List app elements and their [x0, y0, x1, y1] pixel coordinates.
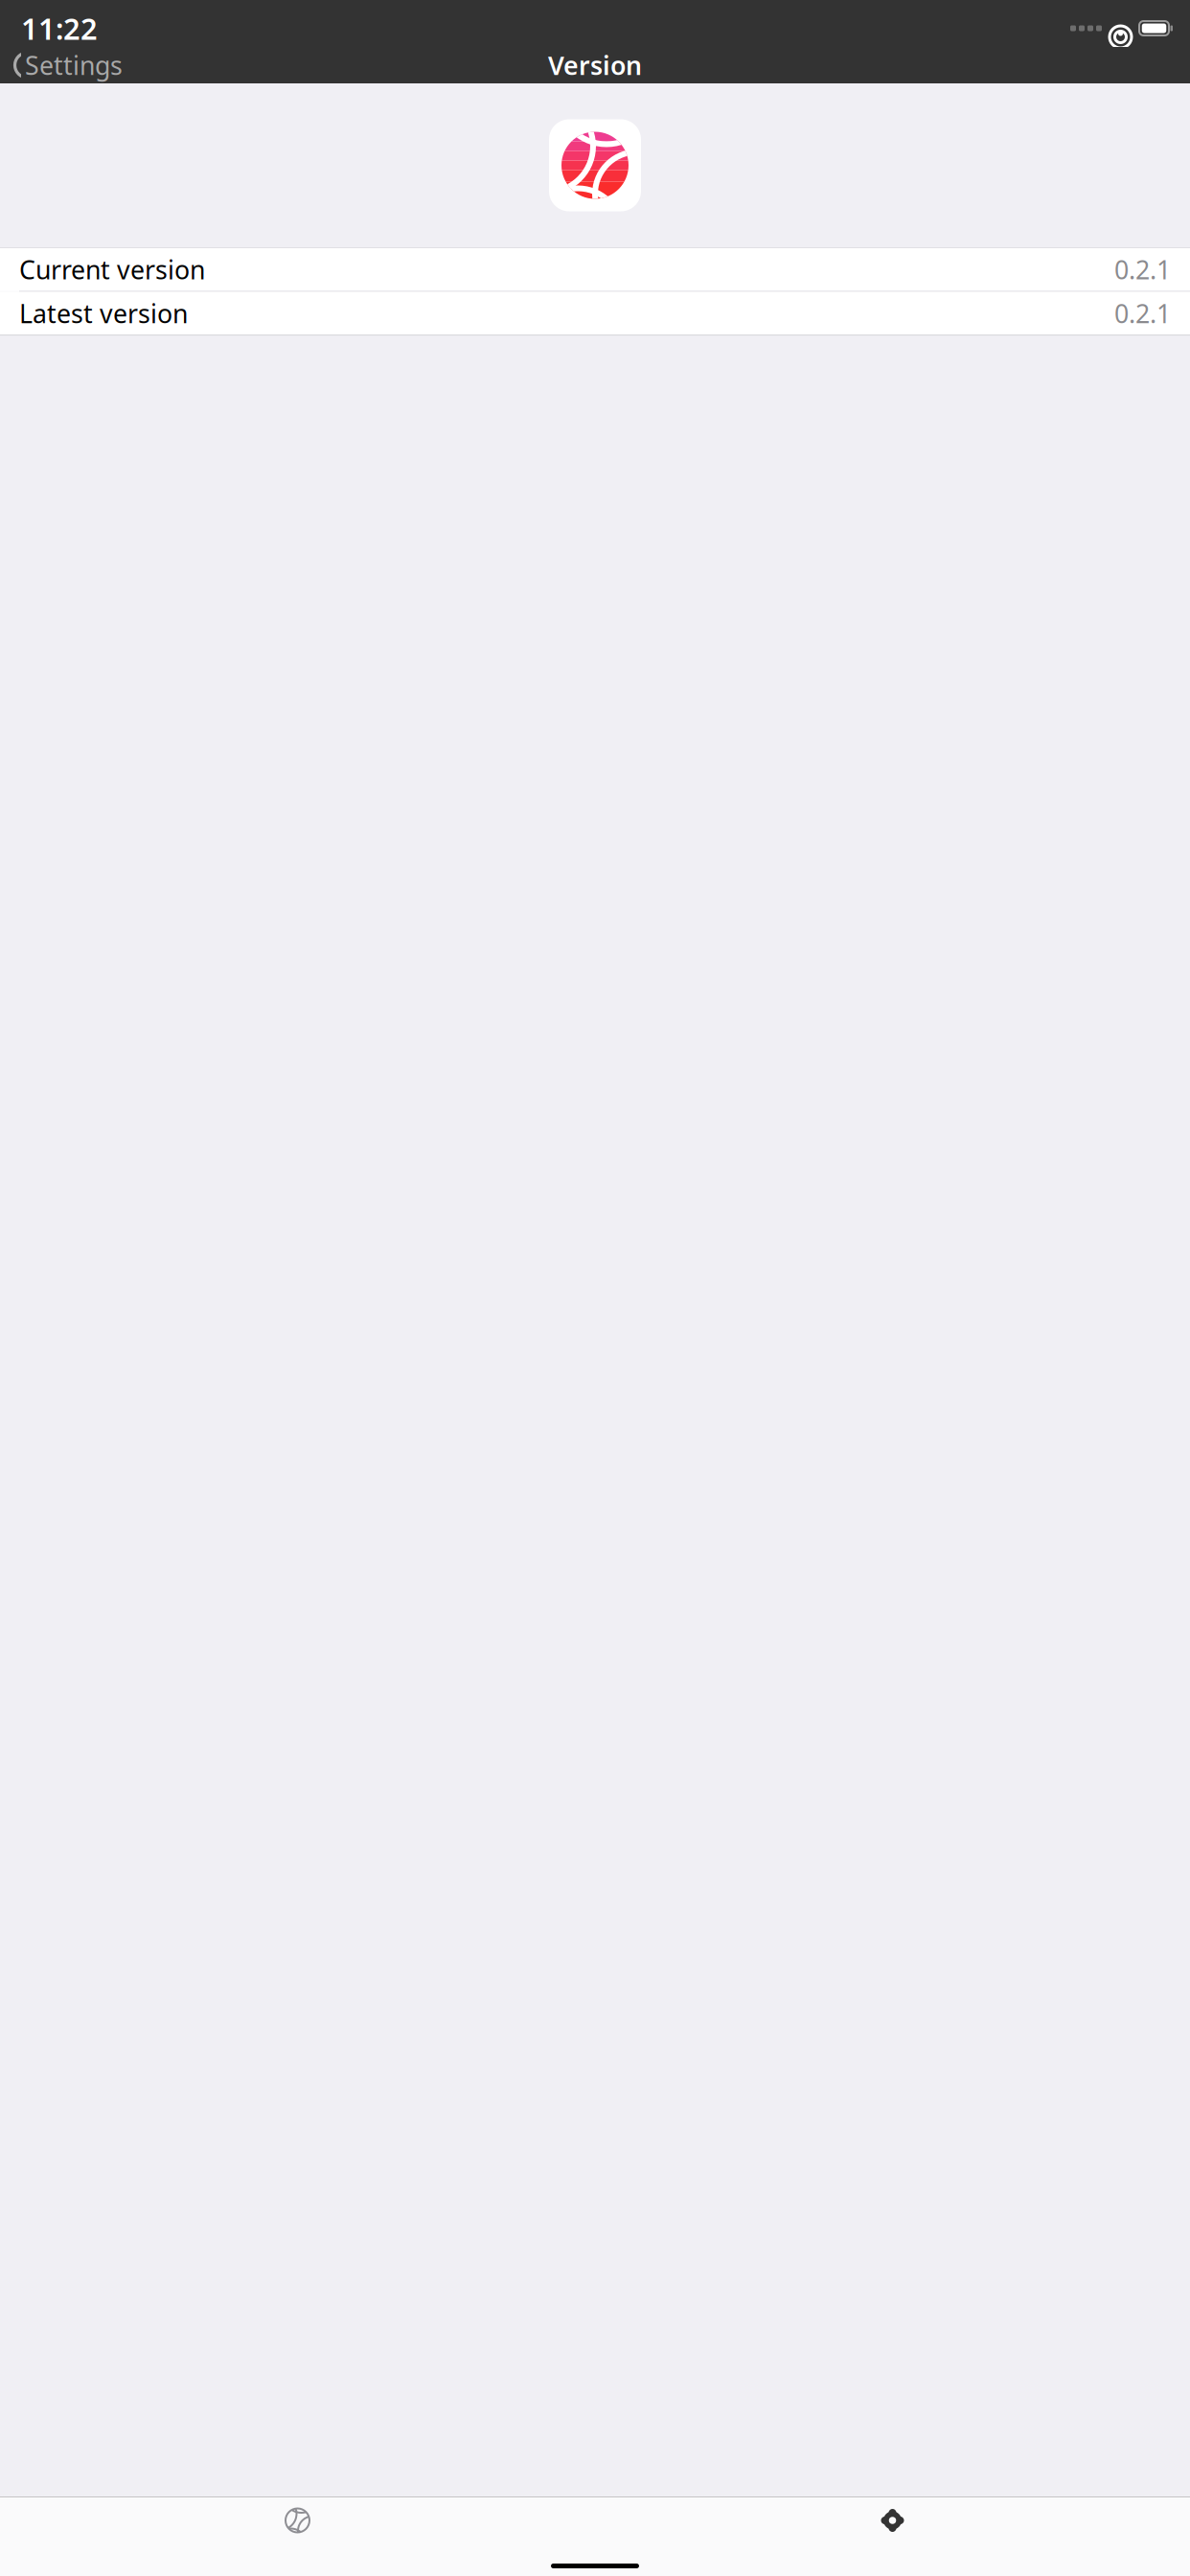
button[interactable]: Latest version	[0, 292, 1190, 335]
staticText: Latest version	[19, 296, 188, 330]
staticText: 0.2.1	[1114, 296, 1171, 330]
staticText: Settings	[25, 48, 123, 82]
button[interactable]: Shots	[0, 2497, 595, 2543]
staticText: Current version	[19, 253, 205, 286]
button[interactable]: Current version	[0, 248, 1190, 291]
staticText: 0.2.1	[1114, 253, 1171, 286]
staticText: Version	[548, 48, 642, 82]
staticText: 11:22	[21, 9, 98, 48]
button[interactable]: Settings	[595, 2497, 1190, 2543]
button[interactable]: Settings	[0, 43, 134, 87]
